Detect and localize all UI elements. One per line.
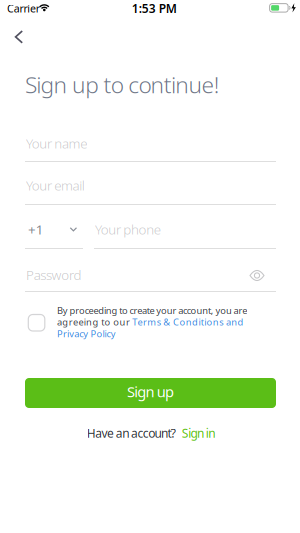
staticText: Sign in	[182, 425, 215, 441]
button[interactable]: Terms & Conditions and	[132, 316, 243, 328]
staticText: Sign up	[127, 382, 174, 401]
staticText: Have an account?	[87, 425, 176, 441]
staticText: +1	[28, 220, 44, 238]
staticText: Carrier	[7, 1, 40, 16]
staticText: Your name	[26, 134, 87, 152]
staticText: 1:53 PM	[132, 0, 177, 16]
button[interactable]: Country code +1	[0, 0, 49, 18]
staticText: Your email	[26, 176, 85, 194]
button[interactable]: Back	[0, 0, 40, 56]
staticText: Terms & Conditions and	[132, 316, 243, 328]
staticText: Sign up to continue!	[25, 69, 220, 100]
staticText: Privacy Policy	[57, 327, 116, 340]
button[interactable]: Agree to terms	[0, 0, 16, 16]
staticText: agreeing to our	[57, 316, 132, 328]
staticText: By proceeding to create your account, yo…	[57, 304, 247, 317]
button[interactable]: Sign up	[25, 378, 276, 408]
button[interactable]: Show password	[0, 0, 20, 15]
staticText: Password	[26, 266, 82, 284]
staticText: Your phone	[95, 220, 161, 238]
button[interactable]: Privacy Policy	[57, 327, 116, 340]
button[interactable]: Sign in	[182, 425, 215, 441]
